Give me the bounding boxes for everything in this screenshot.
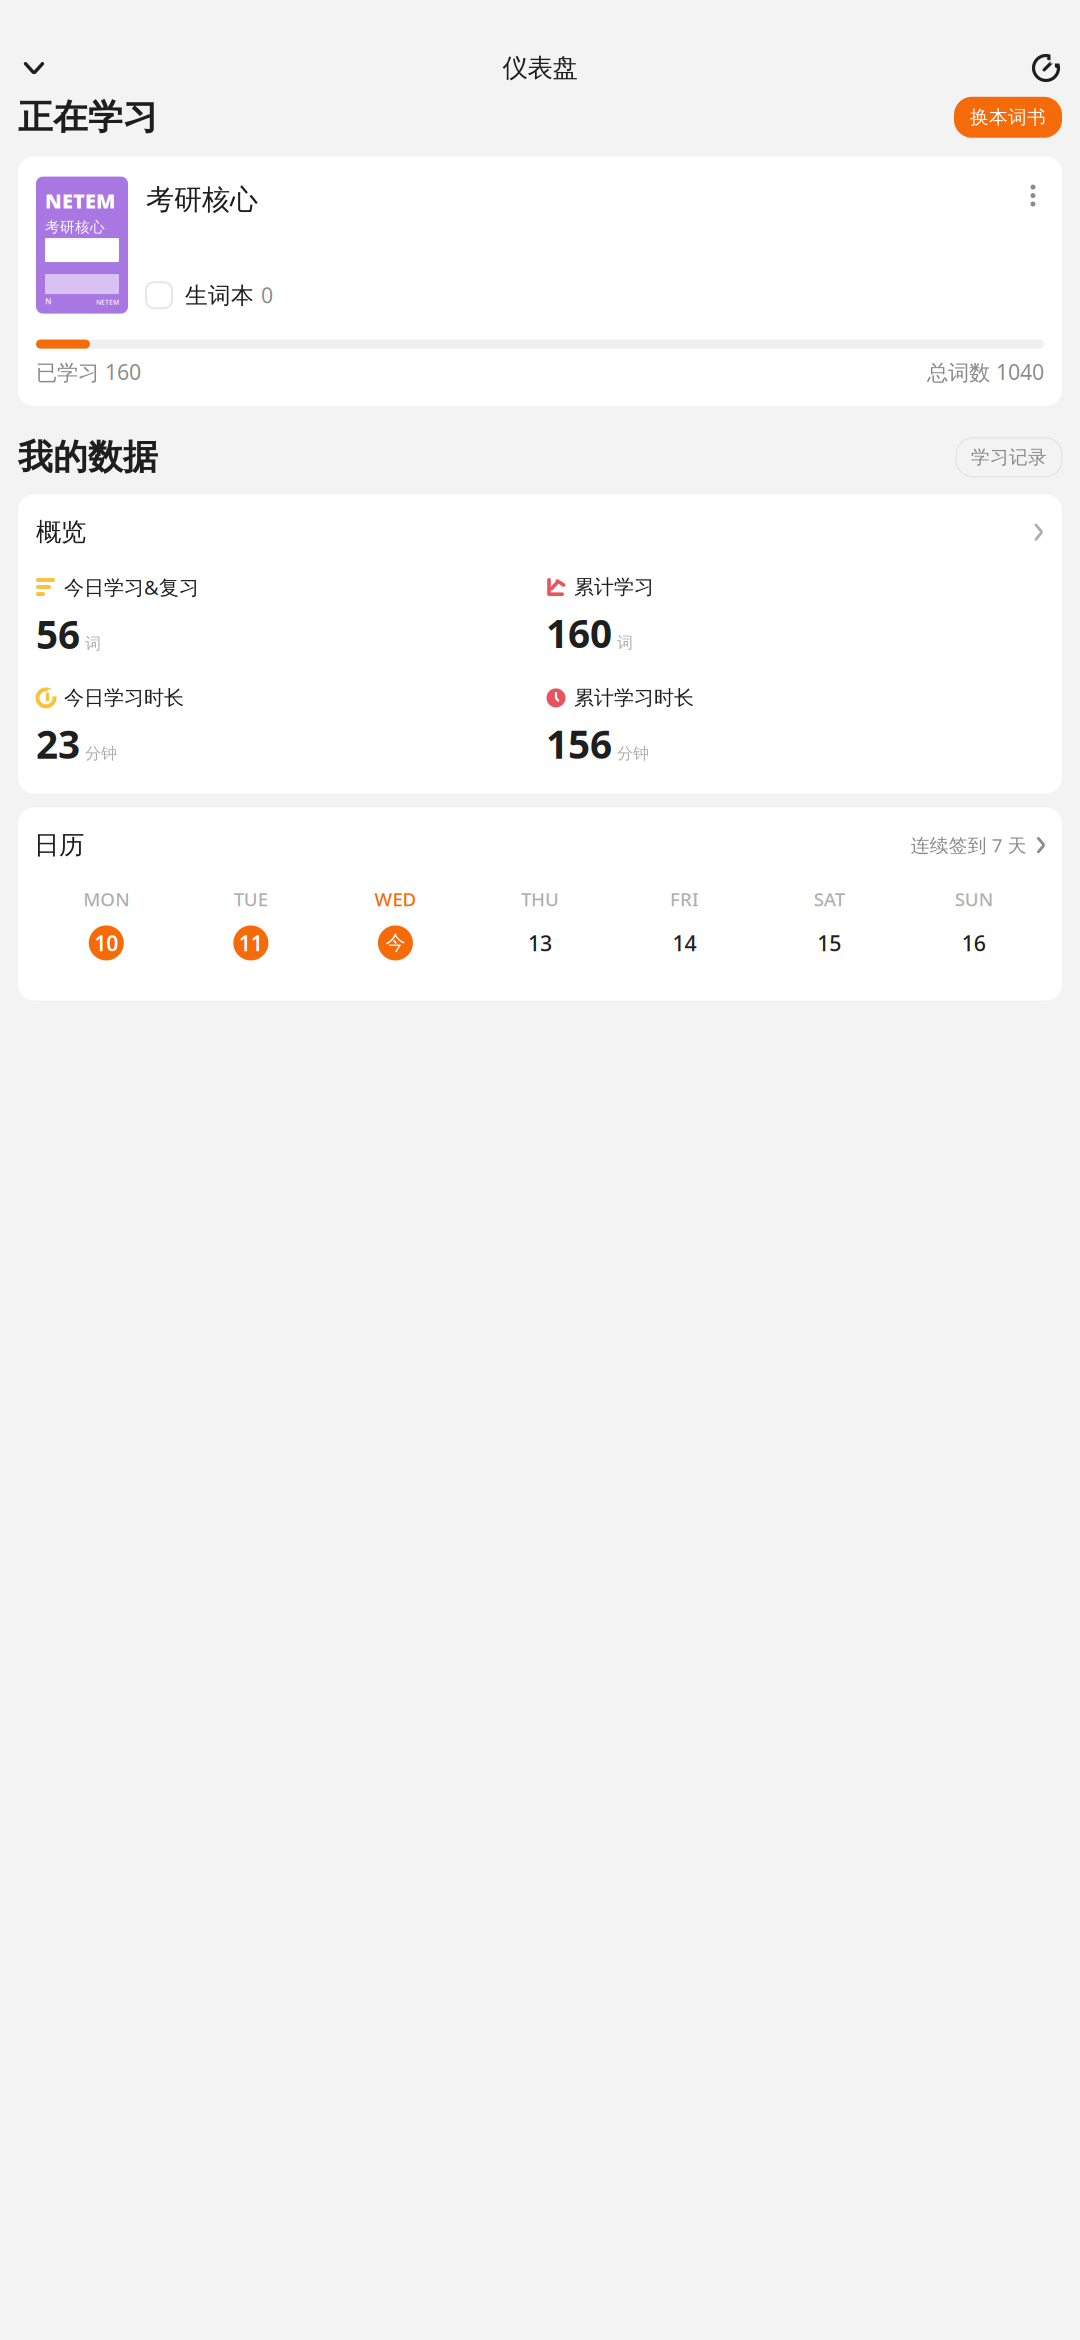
staticText: 考研核心 — [146, 183, 258, 217]
staticText: 总词数 — [927, 360, 990, 386]
button[interactable]: NETEM — [18, 157, 1062, 406]
staticText: 11 — [239, 929, 263, 957]
staticText: 160 — [99, 358, 141, 386]
staticText: 累计学习 — [574, 575, 654, 599]
staticText: 14 — [673, 929, 697, 957]
staticText: 我的数据 — [18, 436, 158, 479]
button[interactable]: Share — [1024, 46, 1068, 90]
staticText: 今 — [385, 931, 405, 955]
button[interactable]: 概览 — [36, 517, 1044, 548]
button[interactable]: Collapse — [12, 46, 56, 90]
staticText: SUN — [955, 887, 993, 911]
staticText: 10 — [94, 929, 118, 957]
staticText: NETEM — [96, 298, 119, 307]
staticText: THU — [521, 887, 559, 911]
staticText: 1040 — [990, 358, 1044, 386]
staticText: 连续签到 7 天 — [911, 833, 1027, 857]
staticText: 0 — [261, 281, 273, 309]
staticText: NETEM — [45, 188, 115, 214]
button[interactable]: 学习记录 — [956, 438, 1062, 477]
staticText: 正在学习 — [18, 96, 158, 139]
staticText: 累计学习时长 — [574, 686, 694, 710]
staticText: 23 — [36, 718, 80, 769]
staticText: 词 — [617, 633, 633, 652]
staticText: FRI — [670, 887, 699, 911]
staticText: 分钟 — [85, 744, 117, 763]
button[interactable]: 换本词书 — [954, 97, 1062, 138]
staticText: 学习记录 — [971, 446, 1047, 469]
button[interactable]: 日历 — [34, 829, 1046, 861]
staticText: 56 — [36, 608, 80, 660]
staticText: WED — [374, 887, 416, 911]
staticText: 分钟 — [617, 744, 649, 763]
staticText: 生词本 — [185, 282, 254, 309]
staticText: 160 — [546, 607, 612, 659]
staticText: 今日学习&复习 — [64, 574, 199, 600]
staticText: 日历 — [34, 829, 84, 861]
staticText: TUE — [234, 887, 268, 911]
staticText: SAT — [814, 887, 845, 911]
staticText: 156 — [546, 718, 612, 769]
staticText: 概览 — [36, 517, 86, 548]
staticText: 已学习 — [36, 360, 99, 386]
staticText: 15 — [817, 929, 841, 957]
staticText: 仪表盘 — [502, 52, 577, 83]
staticText: MON — [83, 887, 129, 911]
staticText: N — [45, 296, 52, 307]
staticText: 今日学习时长 — [64, 686, 184, 710]
staticText: 词 — [85, 634, 101, 653]
staticText: 16 — [962, 929, 986, 957]
staticText: 换本词书 — [970, 106, 1046, 129]
staticText: 考研核心 — [45, 218, 105, 236]
staticText: 13 — [528, 929, 552, 957]
